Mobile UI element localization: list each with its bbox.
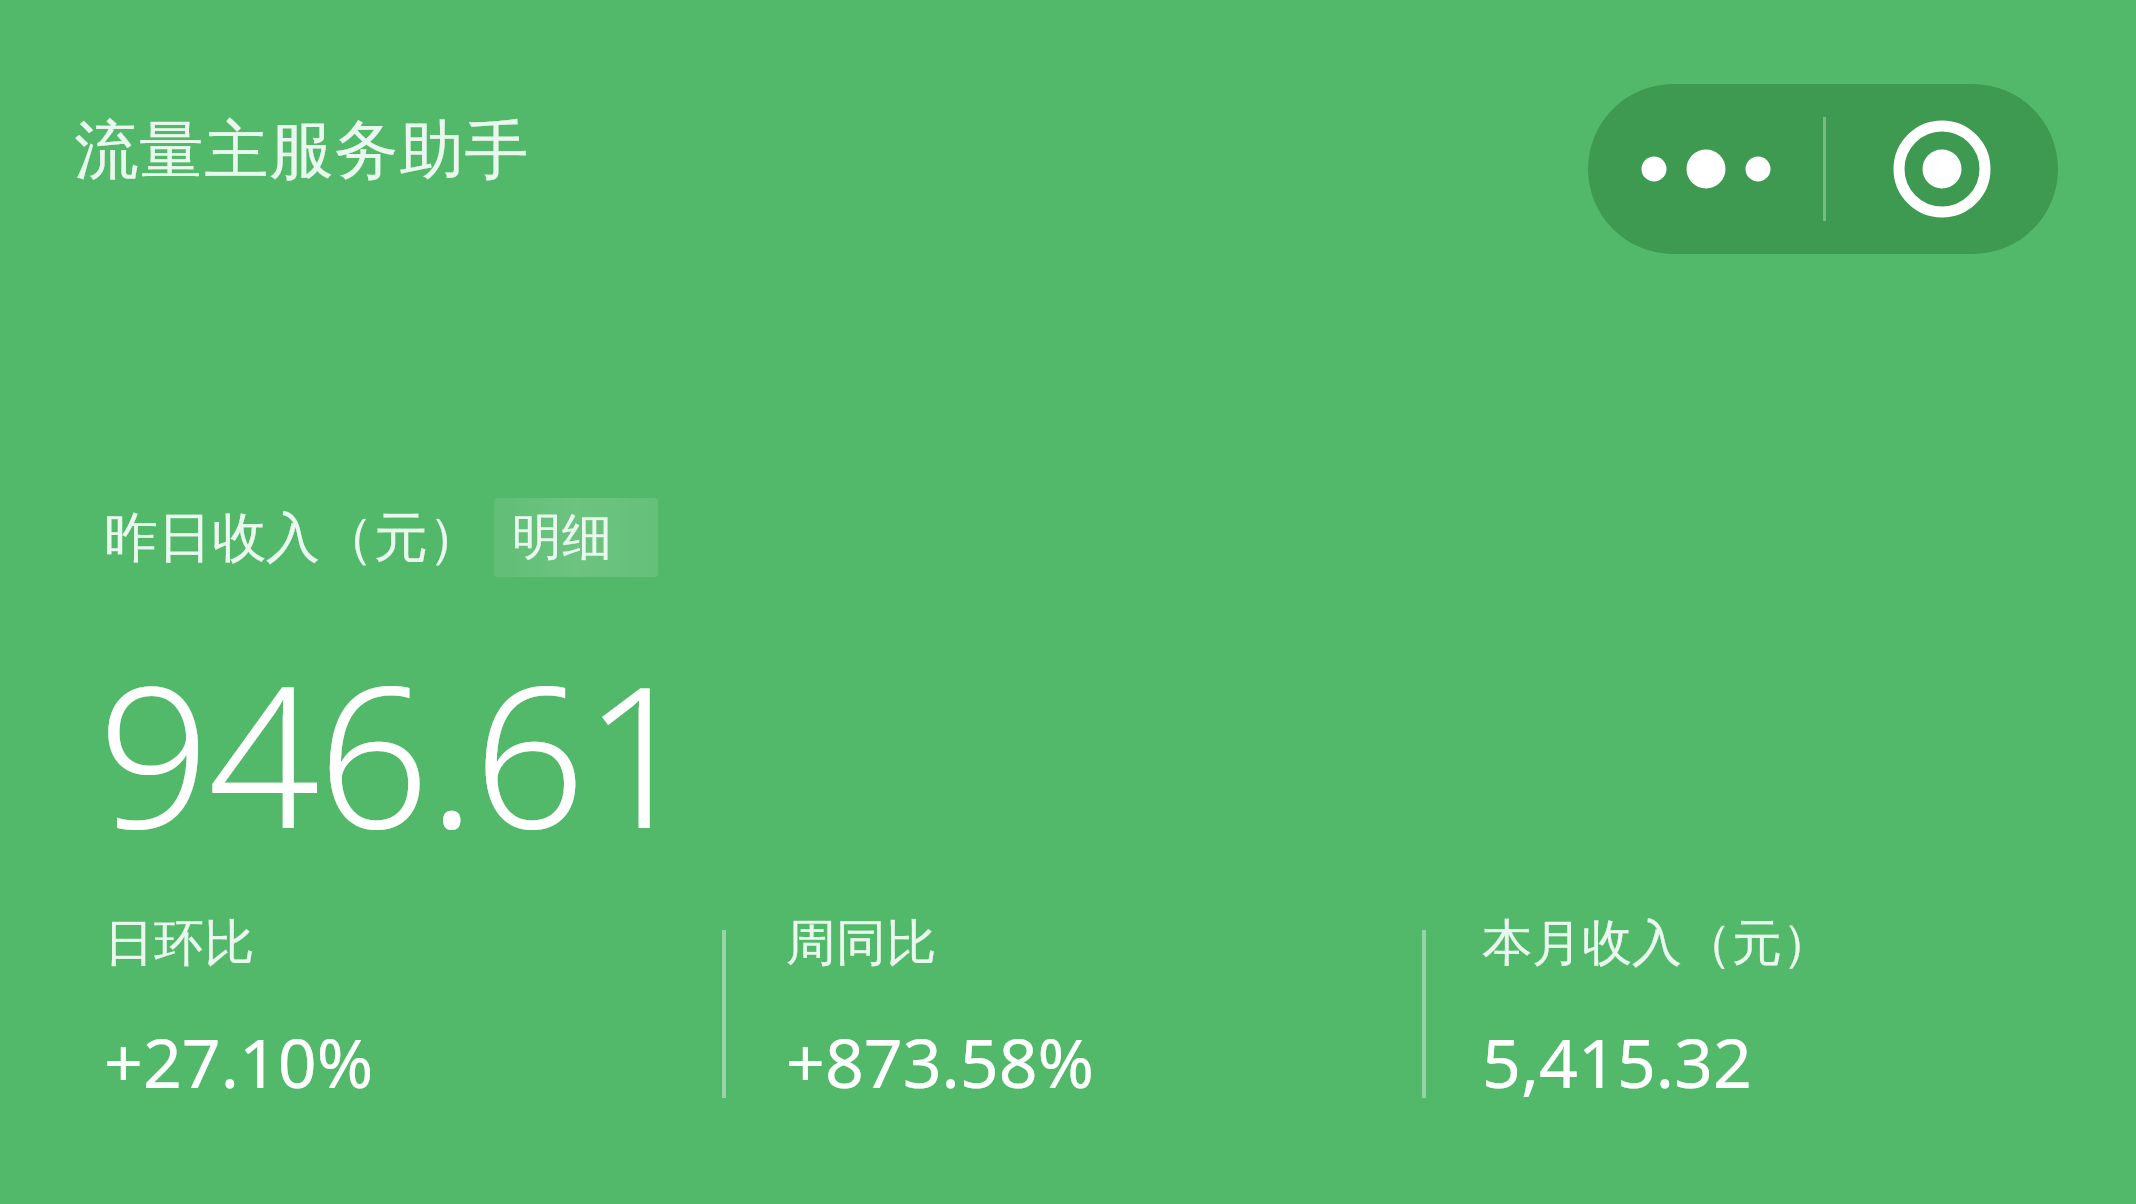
staticText: 日环比: [104, 912, 254, 975]
button[interactable]: 日环比: [104, 912, 398, 1108]
staticText: 本月收入（元）: [1482, 912, 1832, 975]
staticText: 明细: [512, 506, 612, 569]
staticText: 流量主服务助手: [74, 110, 529, 191]
staticText: 946.61: [98, 618, 694, 885]
staticText: +873.58%: [786, 1015, 1095, 1108]
staticText: +27.10%: [104, 1015, 374, 1108]
button[interactable]: 周同比: [786, 912, 1119, 1108]
staticText: 周同比: [786, 912, 936, 975]
button[interactable]: More options: [1588, 84, 1823, 254]
staticText: 昨日收入（元）: [104, 504, 482, 572]
staticText: 5,415.32: [1482, 1015, 1752, 1108]
button[interactable]: 明细: [494, 498, 658, 577]
button[interactable]: Close mini program: [1826, 84, 2058, 254]
button[interactable]: 本月收入（元）: [1482, 912, 1856, 1108]
